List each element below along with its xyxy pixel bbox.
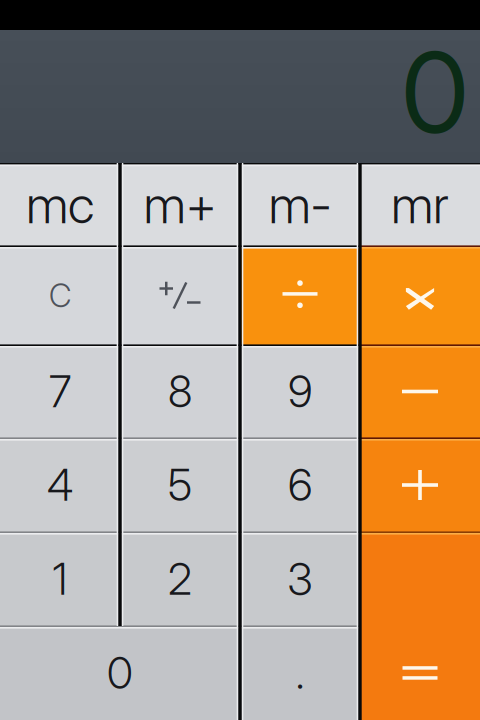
button[interactable]: Plus bbox=[360, 438, 480, 532]
staticText: 1 bbox=[52, 553, 67, 605]
staticText: C bbox=[49, 276, 71, 315]
button[interactable]: 4 bbox=[0, 438, 120, 532]
button[interactable]: Memory add bbox=[120, 163, 240, 246]
button[interactable]: Plus minus bbox=[120, 246, 240, 345]
button[interactable]: 8 bbox=[120, 345, 240, 438]
button[interactable]: . bbox=[240, 626, 360, 720]
staticText: m- bbox=[268, 173, 331, 235]
staticText: 7 bbox=[49, 365, 71, 418]
staticText: m+ bbox=[143, 173, 216, 235]
button[interactable]: Memory clear bbox=[0, 163, 120, 246]
button[interactable]: 1 bbox=[0, 532, 120, 626]
staticText: 8 bbox=[168, 365, 192, 418]
button[interactable]: 9 bbox=[240, 345, 360, 438]
staticText: 9 bbox=[288, 365, 312, 418]
button[interactable]: 7 bbox=[0, 345, 120, 438]
button[interactable]: 2 bbox=[120, 532, 240, 626]
button[interactable]: 0 bbox=[0, 626, 240, 720]
staticText: 5 bbox=[168, 459, 192, 511]
staticText: 0 bbox=[107, 647, 133, 699]
staticText: 6 bbox=[288, 459, 312, 511]
button[interactable]: 5 bbox=[120, 438, 240, 532]
button[interactable]: Multiply bbox=[360, 246, 480, 345]
staticText: 3 bbox=[287, 553, 312, 605]
button[interactable]: Equals bbox=[360, 532, 480, 720]
button[interactable]: Memory subtract bbox=[240, 163, 360, 246]
staticText: mr bbox=[391, 173, 449, 235]
button[interactable]: Memory recall bbox=[360, 163, 480, 246]
staticText: mc bbox=[26, 173, 94, 235]
staticText: 0 bbox=[401, 25, 469, 159]
button[interactable]: Divide bbox=[240, 246, 360, 345]
button[interactable]: 3 bbox=[240, 532, 360, 626]
button[interactable]: 6 bbox=[240, 438, 360, 532]
button[interactable]: Clear bbox=[0, 246, 120, 345]
button[interactable]: Minus bbox=[360, 345, 480, 438]
staticText: 2 bbox=[168, 553, 192, 605]
staticText: . bbox=[295, 647, 304, 699]
staticText: 4 bbox=[47, 459, 73, 511]
